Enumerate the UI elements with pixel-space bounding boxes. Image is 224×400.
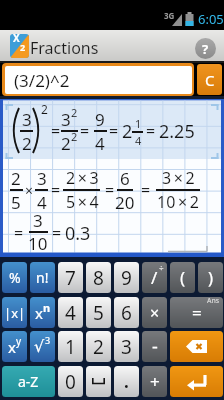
staticText: - [152,334,158,359]
button[interactable]: 6 [114,297,139,328]
staticText: 3 [45,334,51,346]
button[interactable]: x [30,297,55,328]
button[interactable]: √ [30,331,55,362]
button[interactable]: / [142,262,167,293]
staticText: = [14,222,24,244]
staticText: x [35,303,43,323]
staticText: = [192,301,202,324]
staticText: y [16,334,22,348]
staticText: |x| [4,304,26,322]
staticText: 3 [22,108,32,131]
staticText: 4 [95,132,105,155]
button[interactable]: 5 [86,297,111,328]
button[interactable] [86,366,111,397]
staticText: 6:05 [198,10,224,28]
staticText: 10 × 2 [157,191,199,213]
staticText: 8 [93,265,104,291]
staticText: + [150,370,160,393]
staticText: C [205,70,215,90]
staticText: % [9,268,21,287]
button[interactable]: + [142,366,167,397]
staticText: ÷ [159,262,164,273]
staticText: 1 [65,334,76,360]
staticText: 2.25 [159,119,195,144]
staticText: a-Z [18,372,39,391]
staticText: 5 [11,191,21,214]
staticText: n [43,300,51,315]
button[interactable]: ) [198,262,223,293]
staticText: 1 [135,116,142,131]
staticText: × [25,181,34,200]
button[interactable]: 8 [86,262,111,293]
staticText: 3 [121,334,132,360]
staticText: 2 [41,101,48,117]
staticText: 3 [33,209,43,232]
button[interactable] [170,331,223,362]
button[interactable]: (3/2)^2 [2,63,194,96]
staticText: 10 [28,232,48,255]
staticText: 4 [65,300,76,326]
staticText: 3 × 2 [162,167,195,189]
button[interactable]: |x| [2,297,27,328]
staticText: . [124,370,129,393]
button[interactable]: % [2,262,27,293]
staticText: 20 [115,191,135,214]
staticText: (3/2)^2 [14,69,70,92]
staticText: 0.3 [65,221,91,246]
staticText: × [150,302,160,324]
staticText: 2 [20,41,26,53]
staticText: 5 [93,300,104,326]
staticText: ? [202,40,209,58]
staticText: 3G [164,10,175,21]
staticText: 2 [71,105,78,120]
staticText: 2 × 3 [66,167,99,189]
staticText: 9 [95,108,105,131]
staticText: 5 × 4 [66,191,99,213]
button[interactable]: × [142,297,167,328]
staticText: = [52,222,62,244]
staticText: 2 [93,334,104,360]
button[interactable]: n! [30,262,55,293]
button[interactable]: 3 [114,331,139,362]
staticText: 2 [22,132,32,155]
button[interactable]: 1 [58,331,83,362]
button[interactable]: 4 [58,297,83,328]
staticText: = [109,120,119,142]
staticText: 0 [65,369,76,395]
button[interactable]: . [114,366,139,397]
staticText: = [51,179,61,201]
staticText: / [151,266,158,289]
staticText: 6 [121,300,132,326]
staticText: 4 [37,191,47,214]
button[interactable]: a-Z [2,366,55,397]
staticText: 6 [120,167,130,190]
button[interactable]: 7 [58,262,83,293]
staticText: 3 [37,167,47,190]
button[interactable] [170,366,223,397]
staticText: = [146,120,156,142]
button[interactable]: ( [170,262,195,293]
button[interactable]: = [170,297,223,328]
button[interactable]: - [142,331,167,362]
staticText: X [13,34,20,45]
staticText: = [51,120,61,142]
staticText: 2 [71,129,78,144]
staticText: 4 [135,133,142,148]
staticText: 3 [61,108,71,131]
staticText: 2 [122,119,133,144]
staticText: x [8,337,16,357]
staticText: ) [208,266,214,289]
button[interactable]: 0 [58,366,83,397]
button[interactable]: C [197,64,222,95]
staticText: = [141,179,151,201]
button[interactable]: x [2,331,27,362]
staticText: Ans [207,297,220,306]
staticText: 9 [121,265,132,291]
staticText: 7 [65,265,76,291]
staticText: 2 [61,132,71,155]
button[interactable]: 9 [114,262,139,293]
button[interactable]: ? [195,38,216,59]
button[interactable]: 2 [86,331,111,362]
staticText: = [80,120,90,142]
staticText: 2 [11,167,21,190]
